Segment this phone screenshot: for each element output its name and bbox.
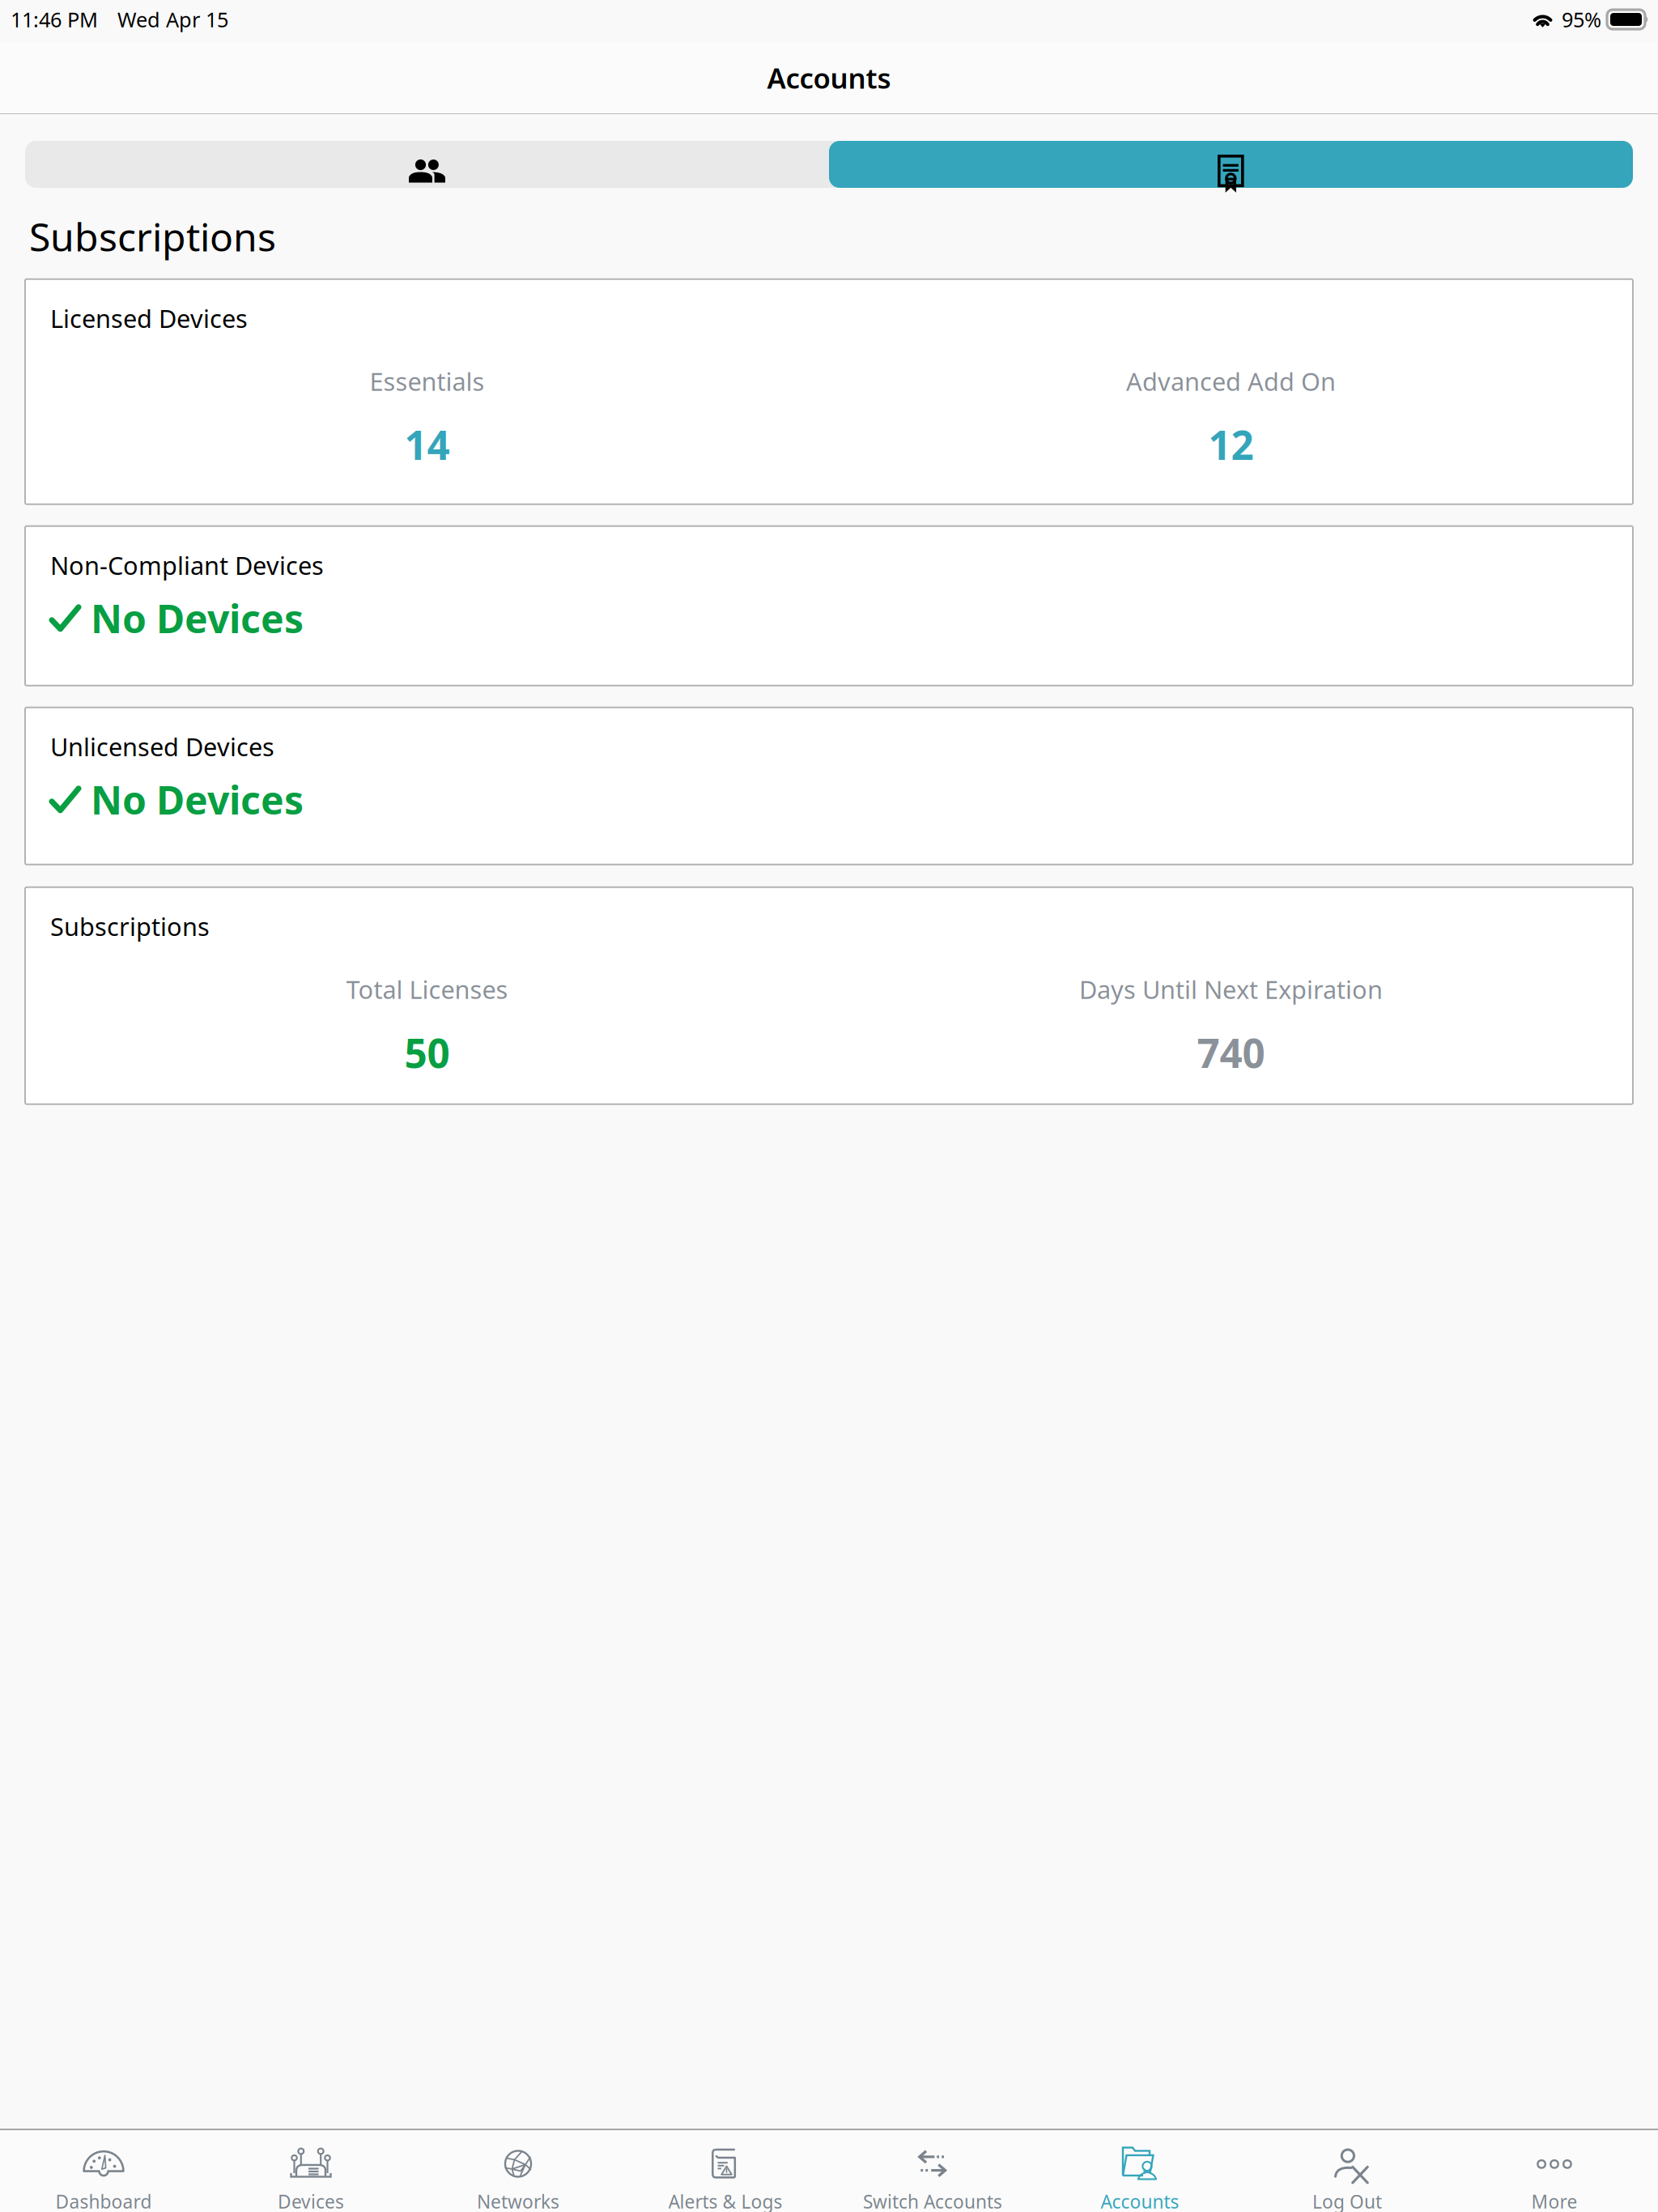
staticText: 12	[1208, 418, 1254, 471]
staticText: Non-Compliant Devices	[50, 549, 324, 582]
button[interactable]: Subscriptions	[829, 141, 1633, 188]
staticText: 95%	[1562, 6, 1601, 33]
staticText: 740	[1197, 1026, 1265, 1079]
button[interactable]: Users	[25, 141, 829, 188]
staticText: Subscriptions	[50, 910, 210, 943]
button[interactable]: Dashboard	[0, 2130, 207, 2212]
staticText: Unlicensed Devices	[50, 730, 274, 763]
staticText: 14	[404, 418, 450, 471]
staticText: Networks	[477, 2189, 559, 2212]
staticText: Alerts & Logs	[668, 2189, 782, 2212]
staticText: Essentials	[370, 365, 485, 398]
staticText: No Devices	[91, 774, 304, 825]
button[interactable]: Devices	[207, 2130, 414, 2212]
button[interactable]: Switch Accounts	[829, 2130, 1036, 2212]
button[interactable]: Log Out	[1243, 2130, 1451, 2212]
staticText: 11:46 PM	[11, 6, 98, 33]
staticText: Advanced Add On	[1126, 365, 1336, 398]
staticText: Wed Apr 15	[117, 6, 228, 33]
button[interactable]: Accounts	[1036, 2130, 1243, 2212]
staticText: More	[1531, 2189, 1577, 2212]
staticText: Days Until Next Expiration	[1079, 973, 1383, 1006]
button[interactable]: Networks	[414, 2130, 622, 2212]
button[interactable]: Alerts & Logs	[622, 2130, 829, 2212]
staticText: Licensed Devices	[50, 302, 248, 335]
staticText: No Devices	[91, 592, 304, 644]
staticText: 50	[404, 1026, 450, 1079]
staticText: Switch Accounts	[863, 2189, 1002, 2212]
staticText: Subscriptions	[29, 211, 276, 262]
staticText: Dashboard	[55, 2189, 152, 2212]
staticText: Accounts	[767, 59, 891, 96]
staticText: Total Licenses	[346, 973, 508, 1006]
staticText: Accounts	[1101, 2189, 1179, 2212]
button[interactable]: More	[1451, 2130, 1658, 2212]
staticText: Devices	[278, 2189, 344, 2212]
staticText: Log Out	[1312, 2189, 1382, 2212]
